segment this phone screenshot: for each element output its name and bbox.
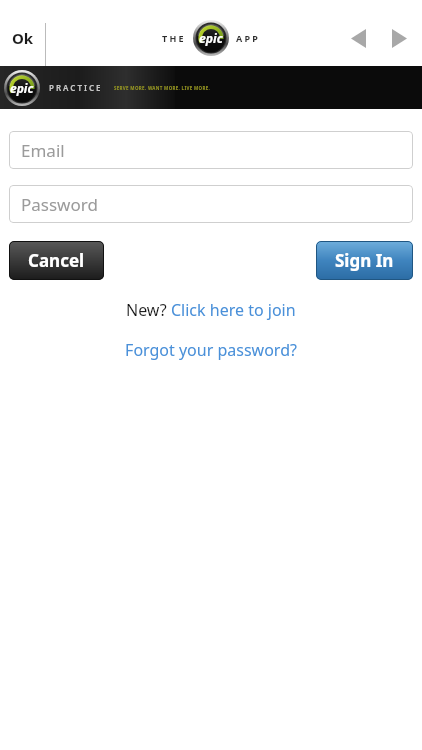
staticText: Cancel xyxy=(28,249,85,272)
staticText: Click here to join xyxy=(171,299,296,321)
staticText: APP xyxy=(236,32,261,44)
button[interactable]: Sign In xyxy=(316,241,413,280)
button[interactable]: Ok xyxy=(0,18,45,58)
button[interactable]: New? xyxy=(126,299,296,321)
staticText: SERVE MORE. WANT MORE. LIVE MORE. xyxy=(114,85,211,91)
staticText: New? xyxy=(126,299,171,321)
button[interactable]: Back xyxy=(343,23,373,53)
staticText: Forgot your password? xyxy=(125,339,297,361)
button[interactable]: Cancel xyxy=(9,241,104,280)
button[interactable]: Email xyxy=(9,131,413,169)
staticText: Ok xyxy=(12,28,34,48)
staticText: epic xyxy=(10,80,34,96)
staticText: Sign In xyxy=(335,249,394,272)
button[interactable]: Forgot your password? xyxy=(125,339,297,361)
button[interactable]: Password xyxy=(9,185,413,223)
button[interactable]: THE xyxy=(162,20,261,56)
button[interactable]: Forward xyxy=(384,23,414,53)
staticText: Email xyxy=(21,139,65,162)
staticText: epic xyxy=(199,30,223,47)
staticText: PRACTICE xyxy=(49,82,103,93)
staticText: THE xyxy=(162,32,186,44)
staticText: Password xyxy=(21,193,98,216)
